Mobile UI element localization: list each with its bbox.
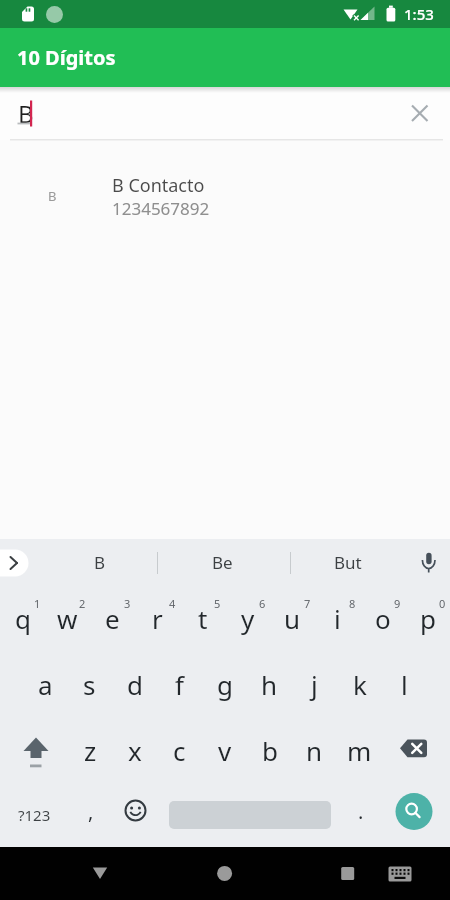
staticText: 9 (394, 596, 401, 611)
staticText: 5 (214, 596, 221, 611)
button[interactable]: x (112, 717, 157, 783)
button[interactable]: 1 (0, 585, 45, 651)
staticText: 0 (439, 596, 446, 611)
staticText: n (306, 733, 323, 768)
staticText: Be (212, 551, 233, 574)
button[interactable]: n (292, 717, 337, 783)
button[interactable] (0, 847, 150, 900)
staticText: j (311, 667, 318, 702)
staticText: m (347, 733, 372, 768)
staticText: w (57, 601, 78, 636)
button[interactable]: , (68, 783, 113, 847)
staticText: d (127, 667, 143, 702)
button[interactable] (158, 783, 338, 847)
button[interactable] (382, 717, 450, 783)
button[interactable]: z (68, 717, 112, 783)
button[interactable]: 0 (405, 585, 450, 651)
staticText: i (334, 601, 341, 636)
staticText: ?123 (18, 805, 51, 825)
staticText: , (88, 798, 94, 825)
staticText: 1234567892 (112, 197, 210, 220)
button[interactable]: l (382, 651, 427, 717)
staticText: g (217, 667, 233, 702)
button[interactable] (0, 539, 34, 585)
button[interactable]: 5 (180, 585, 225, 651)
staticText: p (420, 601, 436, 636)
button[interactable]: But (320, 539, 376, 585)
button[interactable]: B (72, 539, 128, 585)
staticText: u (284, 601, 301, 636)
button[interactable]: a (23, 651, 67, 717)
staticText: o (375, 601, 391, 636)
staticText: l (401, 667, 408, 702)
staticText: B (48, 187, 57, 205)
button[interactable]: Be (194, 539, 250, 585)
staticText: . (358, 798, 364, 825)
staticText: 8 (349, 596, 356, 611)
button[interactable]: 2 (45, 585, 90, 651)
button[interactable]: 7 (270, 585, 315, 651)
staticText: B (94, 551, 106, 574)
button[interactable] (405, 539, 450, 585)
staticText: B Contacto (112, 173, 205, 198)
button[interactable]: 3 (90, 585, 135, 651)
button[interactable]: k (337, 651, 382, 717)
staticText: z (84, 733, 97, 768)
button[interactable] (150, 847, 300, 900)
staticText: r (152, 601, 163, 636)
button[interactable]: m (337, 717, 382, 783)
button[interactable]: . (338, 783, 383, 847)
button[interactable] (300, 847, 450, 900)
button[interactable]: f (157, 651, 202, 717)
staticText: k (353, 667, 367, 702)
button[interactable]: d (112, 651, 157, 717)
button[interactable]: s (67, 651, 112, 717)
staticText: 3 (124, 596, 131, 611)
button[interactable]: 4 (135, 585, 180, 651)
button[interactable]: 9 (360, 585, 405, 651)
staticText: s (83, 667, 96, 702)
staticText: h (261, 667, 278, 702)
staticText: 6 (259, 596, 266, 611)
staticText: y (241, 601, 255, 636)
staticText: 10 Dígitos (17, 44, 116, 71)
staticText: v (218, 733, 232, 768)
staticText: B (18, 97, 34, 130)
staticText: e (105, 601, 120, 636)
staticText: But (334, 551, 362, 574)
staticText: 1:53 (404, 4, 434, 24)
button[interactable]: g (202, 651, 247, 717)
button[interactable]: B (0, 161, 450, 233)
staticText: c (173, 733, 186, 768)
button[interactable] (113, 783, 158, 847)
staticText: 2 (79, 596, 86, 611)
staticText: x (128, 733, 142, 768)
staticText: q (15, 601, 31, 636)
button[interactable] (383, 783, 450, 847)
button[interactable] (400, 92, 444, 136)
staticText: t (198, 601, 208, 636)
staticText: 7 (304, 596, 311, 611)
staticText: f (175, 667, 184, 702)
button[interactable]: 8 (315, 585, 360, 651)
button[interactable]: ?123 (0, 783, 68, 847)
button[interactable]: b (247, 717, 292, 783)
staticText: 1 (34, 596, 41, 611)
staticText: b (262, 733, 278, 768)
button[interactable]: c (157, 717, 202, 783)
staticText: 4 (169, 596, 176, 611)
button[interactable]: 6 (225, 585, 270, 651)
button[interactable] (0, 717, 68, 783)
staticText: a (38, 667, 53, 702)
button[interactable]: v (202, 717, 247, 783)
button[interactable]: h (247, 651, 292, 717)
button[interactable]: j (292, 651, 337, 717)
